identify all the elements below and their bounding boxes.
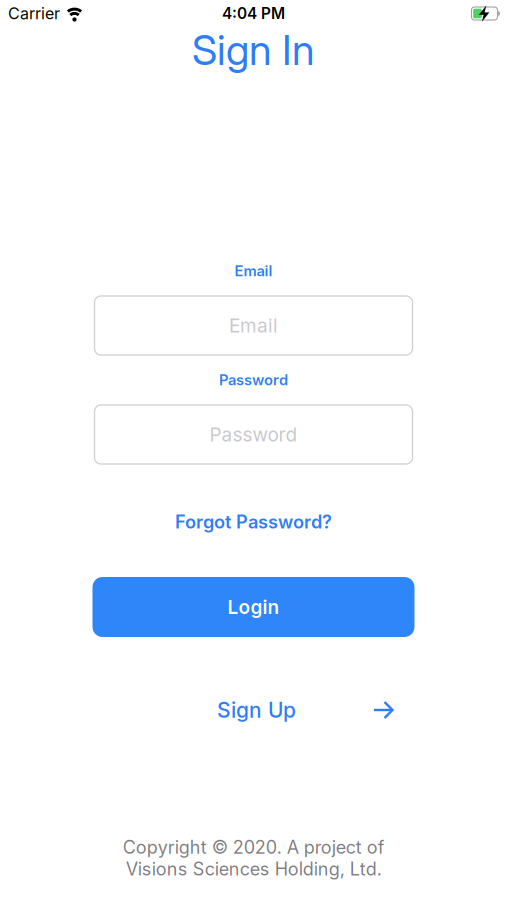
button[interactable]: Forgot Password?	[175, 507, 332, 537]
staticText: Forgot Password?	[175, 511, 332, 533]
staticText: Login	[227, 595, 279, 618]
staticText: Sign Up	[217, 697, 296, 723]
staticText: Password	[209, 423, 297, 446]
button[interactable]: Email	[94, 296, 412, 355]
staticText: Carrier	[8, 4, 60, 23]
button[interactable]: Password	[94, 405, 412, 464]
staticText: Sign In	[192, 25, 315, 75]
staticText: Email	[234, 262, 272, 280]
staticText: Email	[229, 314, 278, 337]
staticText: Copyright © 2020. A project of Visions S…	[122, 836, 384, 880]
button[interactable]: Login	[92, 577, 414, 637]
staticText: 4:04 PM	[222, 4, 285, 23]
button[interactable]: Sign Up	[217, 690, 394, 730]
staticText: Password	[219, 371, 288, 389]
